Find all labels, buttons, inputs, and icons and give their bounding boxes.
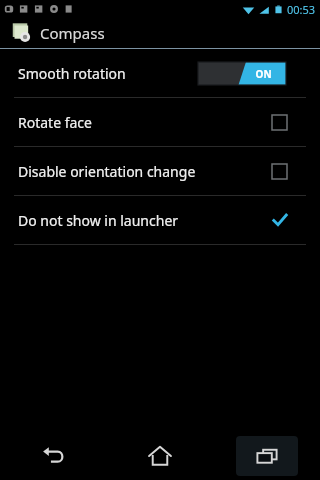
button[interactable]: Switch on	[198, 62, 286, 85]
button[interactable]: Unchecked	[268, 160, 290, 182]
staticText: Disable orientation change	[18, 162, 268, 181]
button[interactable]: Compass	[0, 18, 320, 48]
button[interactable]: Unchecked	[268, 111, 290, 133]
staticText: Compass	[40, 23, 105, 43]
staticText: Do not show in launcher	[18, 211, 268, 230]
staticText: ON	[255, 67, 272, 81]
button[interactable]: Rotate face	[0, 98, 320, 146]
button[interactable]: Do not show in launcher	[0, 196, 320, 244]
button[interactable]: Smooth rotation	[0, 49, 320, 97]
staticText: 00:53	[287, 2, 316, 17]
staticText: Rotate face	[18, 113, 268, 132]
button[interactable]: Recent apps	[213, 432, 320, 480]
staticText: Smooth rotation	[18, 64, 198, 83]
button[interactable]: Home	[106, 432, 213, 480]
button[interactable]: Back	[0, 432, 106, 480]
button[interactable]: Disable orientation change	[0, 147, 320, 195]
button[interactable]: Checked	[268, 209, 290, 231]
